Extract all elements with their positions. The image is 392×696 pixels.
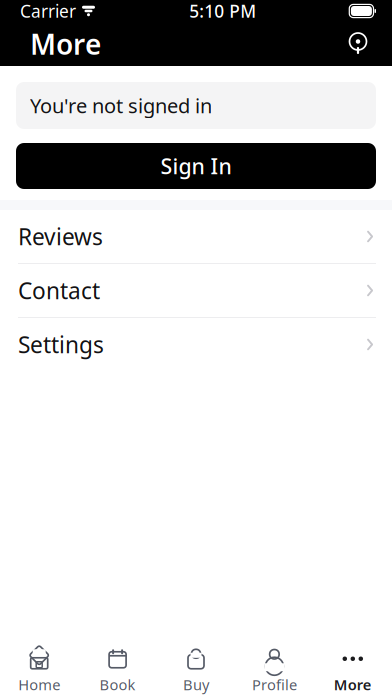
button[interactable]: More [314,645,392,696]
button[interactable]: Settings [0,318,392,371]
button[interactable]: Profile [235,645,314,696]
staticText: Reviews [18,221,103,251]
staticText: Profile [252,675,297,694]
staticText: Home [18,675,60,694]
button[interactable]: Location [336,22,380,66]
staticText: You're not signed in [30,92,212,119]
button[interactable]: Book [78,645,157,696]
staticText: 5:10 PM [189,0,256,22]
staticText: Buy [183,675,209,694]
staticText: More [334,675,372,694]
button[interactable]: Contact [0,264,392,317]
button[interactable]: Reviews [0,210,392,263]
staticText: Contact [18,275,100,305]
staticText: Book [100,675,136,694]
staticText: More [30,25,101,63]
button[interactable]: Sign In [16,143,376,189]
button[interactable]: Home [0,645,78,696]
staticText: Settings [18,329,104,359]
button[interactable]: Buy [157,645,235,696]
staticText: Carrier [20,0,76,22]
staticText: Sign In [160,152,231,180]
